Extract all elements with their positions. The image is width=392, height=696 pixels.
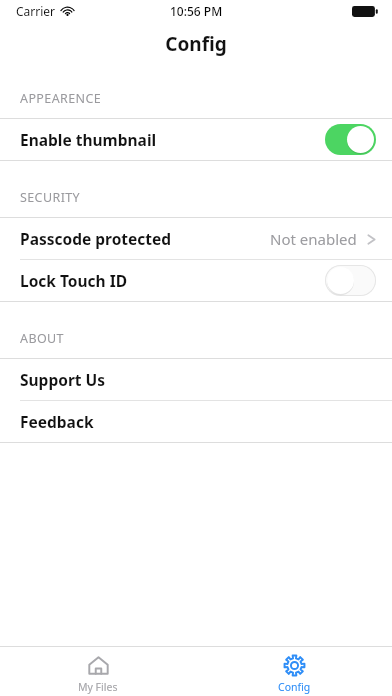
staticText: 10:56 PM [170, 3, 223, 19]
staticText: Support Us [20, 369, 106, 390]
staticText: Passcode protected [20, 228, 172, 249]
staticText: APPEARENCE [20, 90, 102, 107]
button[interactable]: Config [196, 647, 392, 696]
staticText: Config [165, 31, 227, 57]
button[interactable]: My Files [0, 647, 196, 696]
staticText: SECURITY [20, 189, 81, 206]
button[interactable]: Support Us [0, 359, 392, 400]
button[interactable]: Off [325, 265, 376, 296]
button[interactable]: On [325, 124, 376, 155]
staticText: Enable thumbnail [20, 129, 157, 150]
staticText: Not enabled [270, 229, 357, 249]
staticText: Feedback [20, 411, 94, 432]
other: Open [367, 232, 376, 247]
staticText: My Files [78, 680, 118, 694]
staticText: ABOUT [20, 330, 64, 347]
staticText: Config [278, 680, 311, 694]
other: My Files [87, 654, 110, 677]
staticText: Lock Touch ID [20, 270, 128, 291]
button[interactable]: Lock Touch ID [0, 260, 392, 301]
staticText: Carrier [16, 3, 56, 19]
button[interactable]: Feedback [0, 401, 392, 442]
button[interactable]: Enable thumbnail [0, 119, 392, 160]
button[interactable]: Passcode protected [0, 218, 392, 259]
other: Config [283, 654, 306, 677]
